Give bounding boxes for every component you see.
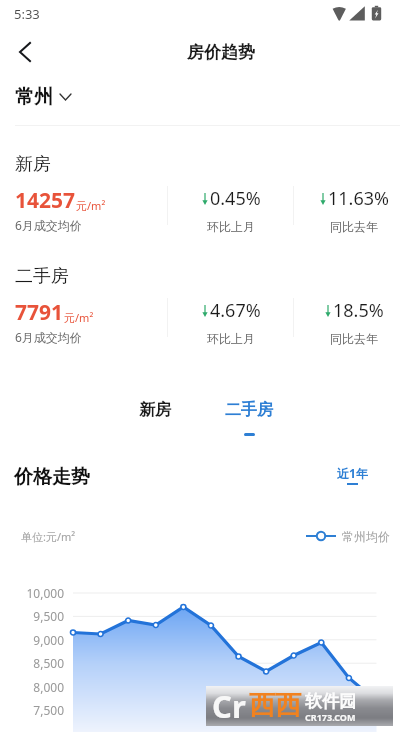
button[interactable]: 二手房 [211, 398, 287, 438]
staticText: 西西 [249, 689, 301, 722]
staticText: Cr [212, 685, 246, 725]
staticText: 环比上月 [207, 331, 255, 346]
staticText: 环比上月 [207, 219, 255, 234]
staticText: 5:33 [14, 5, 40, 23]
staticText: 9,500 [0, 608, 64, 624]
staticText: 二手房 [15, 265, 69, 288]
staticText: 房价趋势 [187, 42, 255, 63]
staticText: 7,500 [0, 702, 64, 718]
staticText: 8,000 [0, 679, 64, 695]
staticText: 7791 [15, 298, 64, 327]
button[interactable]: 近1年 [337, 465, 368, 485]
button[interactable]: Back [0, 28, 48, 76]
staticText: 软件园 [305, 691, 356, 712]
staticText: 同比去年 [330, 219, 378, 234]
staticText: 新房 [139, 400, 171, 420]
staticText: 元/m² [76, 198, 106, 213]
staticText: 常州均价 [342, 529, 390, 544]
staticText: 0.45% [210, 186, 261, 211]
staticText: 单位:元/m² [21, 529, 76, 544]
staticText: 4.67% [210, 298, 261, 323]
staticText: 近1年 [337, 465, 368, 481]
staticText: 18.5% [333, 298, 384, 323]
staticText: 元/m² [64, 310, 94, 325]
staticText: 11.63% [328, 186, 389, 211]
staticText: 6月成交均价 [15, 217, 82, 233]
staticText: 新房 [15, 153, 51, 176]
staticText: 9,000 [0, 632, 64, 648]
staticText: CR173.COM [305, 711, 356, 723]
staticText: 价格走势 [14, 465, 90, 489]
staticText: 常州 [15, 85, 53, 109]
button[interactable]: 常州 [0, 80, 83, 114]
staticText: 二手房 [225, 400, 273, 420]
staticText: 6月成交均价 [15, 329, 82, 345]
button[interactable]: 新房 [125, 398, 185, 438]
staticText: 同比去年 [330, 331, 378, 346]
staticText: 8,500 [0, 655, 64, 671]
staticText: 10,000 [0, 585, 64, 601]
staticText: 14257 [15, 186, 76, 215]
